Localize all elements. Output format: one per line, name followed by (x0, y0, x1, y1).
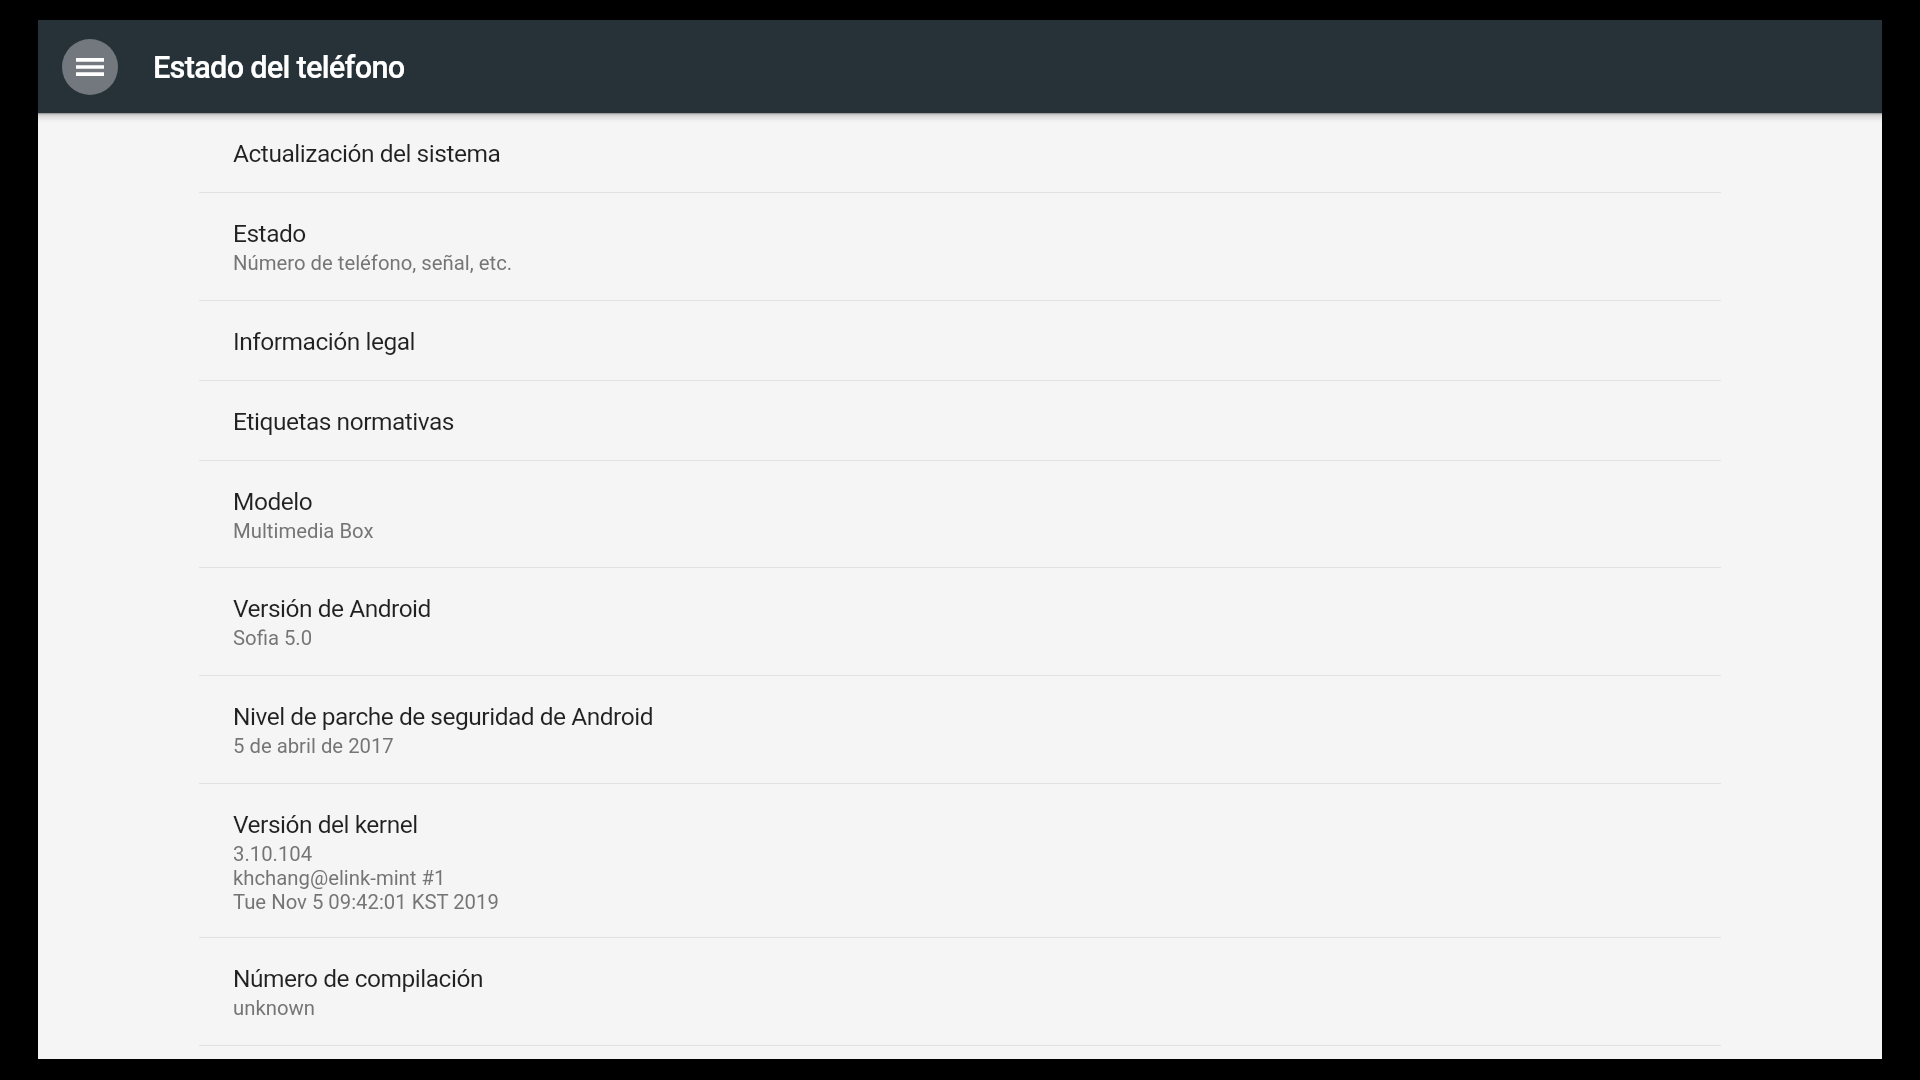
staticText: 3.10.104 (233, 842, 313, 866)
staticText: 5 de abril de 2017 (233, 734, 394, 758)
button[interactable]: Modelo (38, 461, 1882, 568)
staticText: khchang@elink-mint #1 (233, 866, 446, 890)
staticText: Información legal (233, 327, 415, 356)
staticText: Estado del teléfono (153, 50, 405, 86)
staticText: Multimedia Box (233, 519, 374, 543)
button[interactable]: Número de compilación (38, 938, 1882, 1046)
button[interactable]: Nivel de parche de seguridad de Android (38, 676, 1882, 784)
button[interactable]: Etiquetas normativas (38, 381, 1882, 461)
staticText: Tue Nov 5 09:42:01 KST 2019 (233, 890, 499, 914)
button[interactable]: Versión de Android (38, 568, 1882, 676)
staticText: Nivel de parche de seguridad de Android (233, 702, 653, 731)
button[interactable]: Open navigation menu (62, 39, 118, 95)
button[interactable]: Información legal (38, 301, 1882, 381)
staticText: Actualización del sistema (233, 139, 501, 168)
staticText: unknown (233, 996, 315, 1020)
button[interactable]: Versión del kernel (38, 784, 1882, 938)
staticText: Versión del kernel (233, 810, 418, 839)
staticText: Número de teléfono, señal, etc. (233, 251, 513, 275)
button[interactable]: Estado (38, 193, 1882, 301)
staticText: Sofia 5.0 (233, 626, 313, 650)
staticText: Versión de Android (233, 594, 431, 623)
button[interactable]: Actualización del sistema (38, 112, 1882, 193)
staticText: Número de compilación (233, 964, 483, 993)
staticText: Modelo (233, 487, 313, 516)
staticText: Etiquetas normativas (233, 407, 455, 436)
staticText: Estado (233, 219, 306, 248)
